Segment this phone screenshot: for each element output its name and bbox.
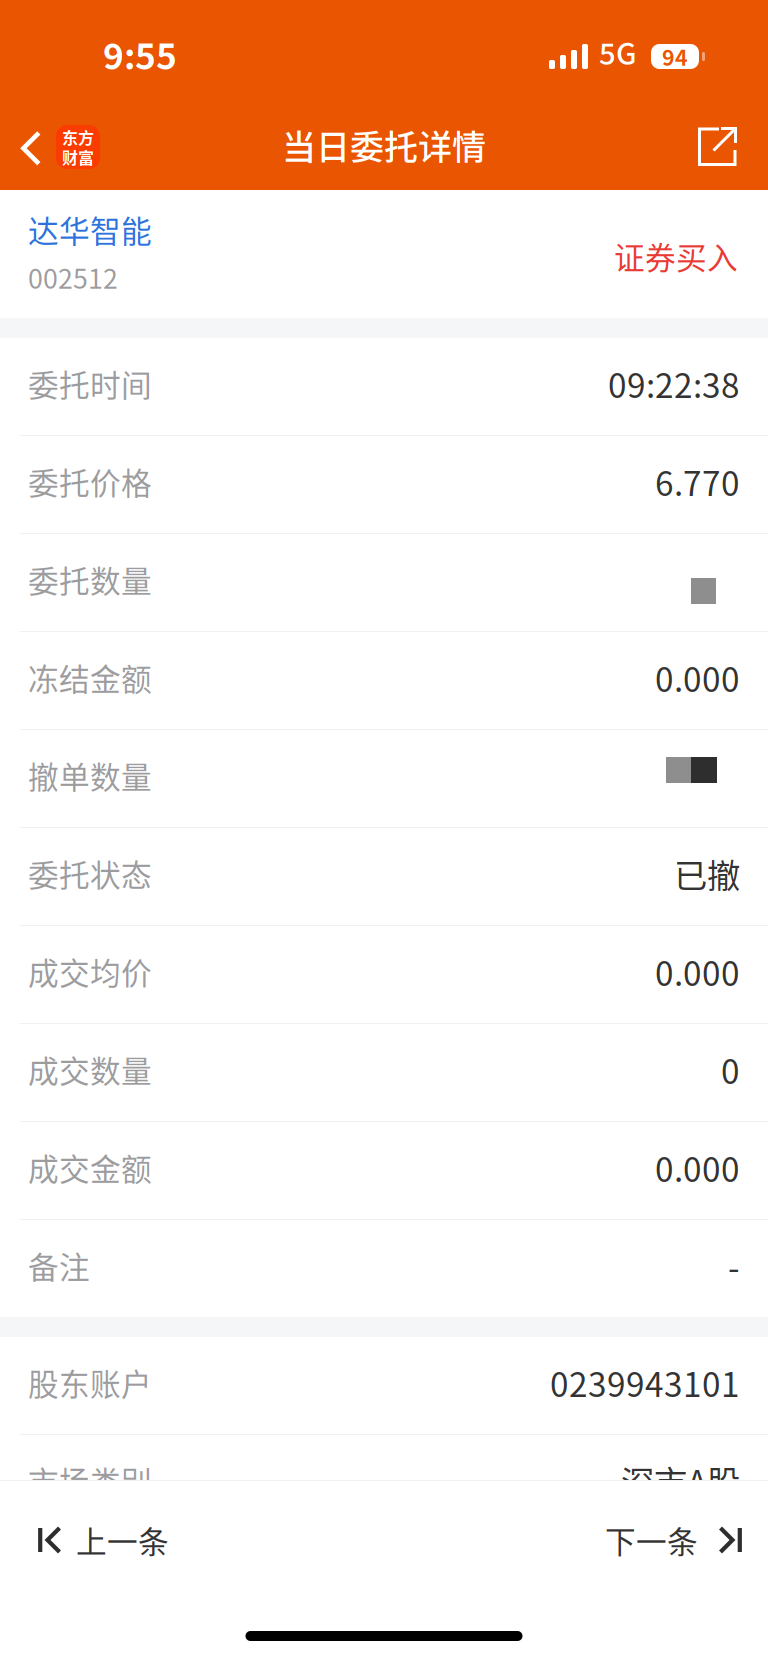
staticText: 委托时间: [28, 361, 152, 406]
staticText: 6.770: [655, 457, 740, 506]
staticText: 9:55: [103, 28, 177, 80]
staticText: 东方: [62, 125, 94, 148]
button[interactable]: Back: [0, 104, 114, 190]
staticText: 财富: [62, 145, 94, 169]
staticText: 成交数量: [28, 1047, 152, 1092]
staticText: 0.000: [655, 947, 740, 996]
staticText: 下一条: [605, 1518, 698, 1562]
staticText: 达华智能: [28, 207, 152, 252]
staticText: 0239943101: [550, 1358, 740, 1407]
staticText: 成交金额: [28, 1145, 152, 1190]
staticText: 94: [662, 41, 688, 72]
staticText: 5G: [599, 31, 637, 73]
staticText: 成交均价: [28, 949, 152, 994]
staticText: 已撤: [674, 849, 740, 898]
staticText: 市场类别: [28, 1458, 152, 1503]
staticText: 0.000: [655, 653, 740, 702]
staticText: 09:22:38: [608, 359, 740, 408]
staticText: 002512: [28, 258, 118, 296]
staticText: -: [728, 1241, 740, 1290]
staticText: 冻结金额: [28, 655, 152, 700]
staticText: 撤单数量: [28, 753, 152, 798]
button[interactable]: 下一条: [579, 1488, 768, 1592]
button[interactable]: 上一条: [0, 1488, 195, 1592]
button[interactable]: Share: [677, 104, 768, 190]
staticText: 0: [721, 1045, 740, 1094]
staticText: 0.000: [655, 1143, 740, 1192]
staticText: 上一条: [76, 1518, 169, 1562]
staticText: 当日委托详情: [282, 120, 486, 170]
staticText: 备注: [28, 1243, 90, 1288]
staticText: 委托数量: [28, 557, 152, 602]
staticText: 深市A股: [621, 1456, 740, 1505]
staticText: 委托状态: [28, 851, 152, 896]
staticText: 委托价格: [28, 459, 152, 504]
staticText: 证券买入: [614, 234, 738, 278]
staticText: 股东账户: [28, 1360, 152, 1405]
